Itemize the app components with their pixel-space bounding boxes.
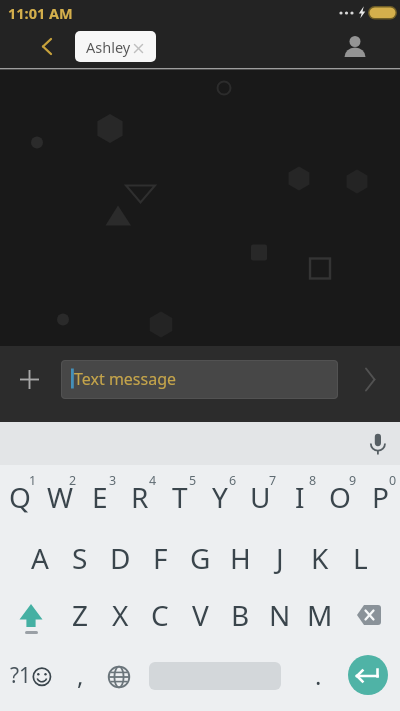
staticText: X — [112, 596, 129, 634]
button[interactable]: F — [140, 526, 180, 586]
button[interactable]: D — [100, 526, 140, 586]
staticText: 3 — [109, 472, 117, 486]
staticText: K — [311, 539, 329, 577]
button[interactable]: L — [340, 526, 380, 586]
button[interactable]: O — [320, 465, 360, 526]
staticText: E — [92, 478, 108, 516]
button[interactable]: Z — [60, 586, 100, 646]
button[interactable]: Q — [0, 465, 40, 526]
staticText: L — [353, 539, 368, 577]
staticText: 0 — [389, 472, 397, 486]
staticText: U — [250, 478, 271, 516]
button[interactable]: E — [80, 465, 120, 526]
staticText: , — [77, 659, 84, 692]
button[interactable]: X — [100, 586, 140, 646]
button[interactable]: H — [220, 526, 260, 586]
button[interactable] — [350, 360, 390, 399]
staticText: T — [172, 478, 188, 516]
staticText: 11:01 AM — [8, 3, 73, 23]
staticText: P — [372, 478, 389, 516]
staticText: Text message — [74, 368, 177, 390]
button[interactable]: N — [260, 586, 300, 646]
button[interactable]: P — [360, 465, 400, 526]
staticText: F — [153, 539, 168, 577]
button[interactable] — [337, 28, 373, 64]
staticText: 7 — [269, 472, 277, 486]
staticText: 1 — [29, 472, 37, 486]
staticText: W — [47, 478, 74, 516]
button[interactable] — [100, 646, 140, 711]
staticText: 8 — [309, 472, 317, 486]
staticText: M — [307, 596, 333, 634]
staticText: C — [151, 596, 169, 634]
staticText: D — [110, 539, 131, 577]
button[interactable] — [340, 586, 400, 646]
staticText: Y — [212, 478, 228, 516]
button[interactable] — [30, 30, 62, 62]
staticText: V — [192, 596, 209, 634]
staticText: R — [131, 478, 149, 516]
button[interactable] — [0, 586, 60, 646]
button[interactable]: Text message — [61, 360, 338, 399]
button[interactable]: U — [240, 465, 280, 526]
button[interactable]: B — [220, 586, 260, 646]
button[interactable] — [360, 422, 398, 465]
button[interactable]: T — [160, 465, 200, 526]
button[interactable]: C — [140, 586, 180, 646]
staticText: Z — [72, 596, 89, 634]
button[interactable] — [13, 360, 49, 399]
staticText: S — [72, 539, 88, 577]
staticText: B — [231, 596, 250, 634]
button[interactable]: W — [40, 465, 80, 526]
staticText: J — [276, 539, 284, 577]
button[interactable]: K — [300, 526, 340, 586]
staticText: N — [269, 596, 291, 634]
staticText: G — [190, 539, 211, 577]
button[interactable]: G — [180, 526, 220, 586]
button[interactable]: V — [180, 586, 220, 646]
button[interactable] — [348, 655, 388, 695]
button[interactable]: M — [300, 586, 340, 646]
button[interactable]: . — [298, 646, 338, 711]
staticText: ?1 — [10, 661, 32, 690]
staticText: . — [315, 659, 322, 692]
button[interactable]: A — [20, 526, 60, 586]
staticText: Q — [9, 478, 31, 516]
staticText: A — [31, 539, 49, 577]
button[interactable]: R — [120, 465, 160, 526]
staticText: I — [295, 478, 305, 516]
staticText: Ashley — [86, 37, 131, 57]
button[interactable]: I — [280, 465, 320, 526]
button[interactable]: ?1 — [0, 646, 58, 711]
staticText: H — [230, 539, 251, 577]
button[interactable]: S — [60, 526, 100, 586]
staticText: O — [329, 478, 351, 516]
staticText: 2 — [69, 472, 77, 486]
staticText: 9 — [349, 472, 357, 486]
button[interactable]: Y — [200, 465, 240, 526]
staticText: 6 — [229, 472, 237, 486]
button[interactable]: J — [260, 526, 300, 586]
staticText: 4 — [149, 472, 157, 486]
button[interactable]: , — [60, 646, 100, 711]
staticText: 5 — [189, 472, 197, 486]
button[interactable]: Ashley — [75, 31, 156, 62]
